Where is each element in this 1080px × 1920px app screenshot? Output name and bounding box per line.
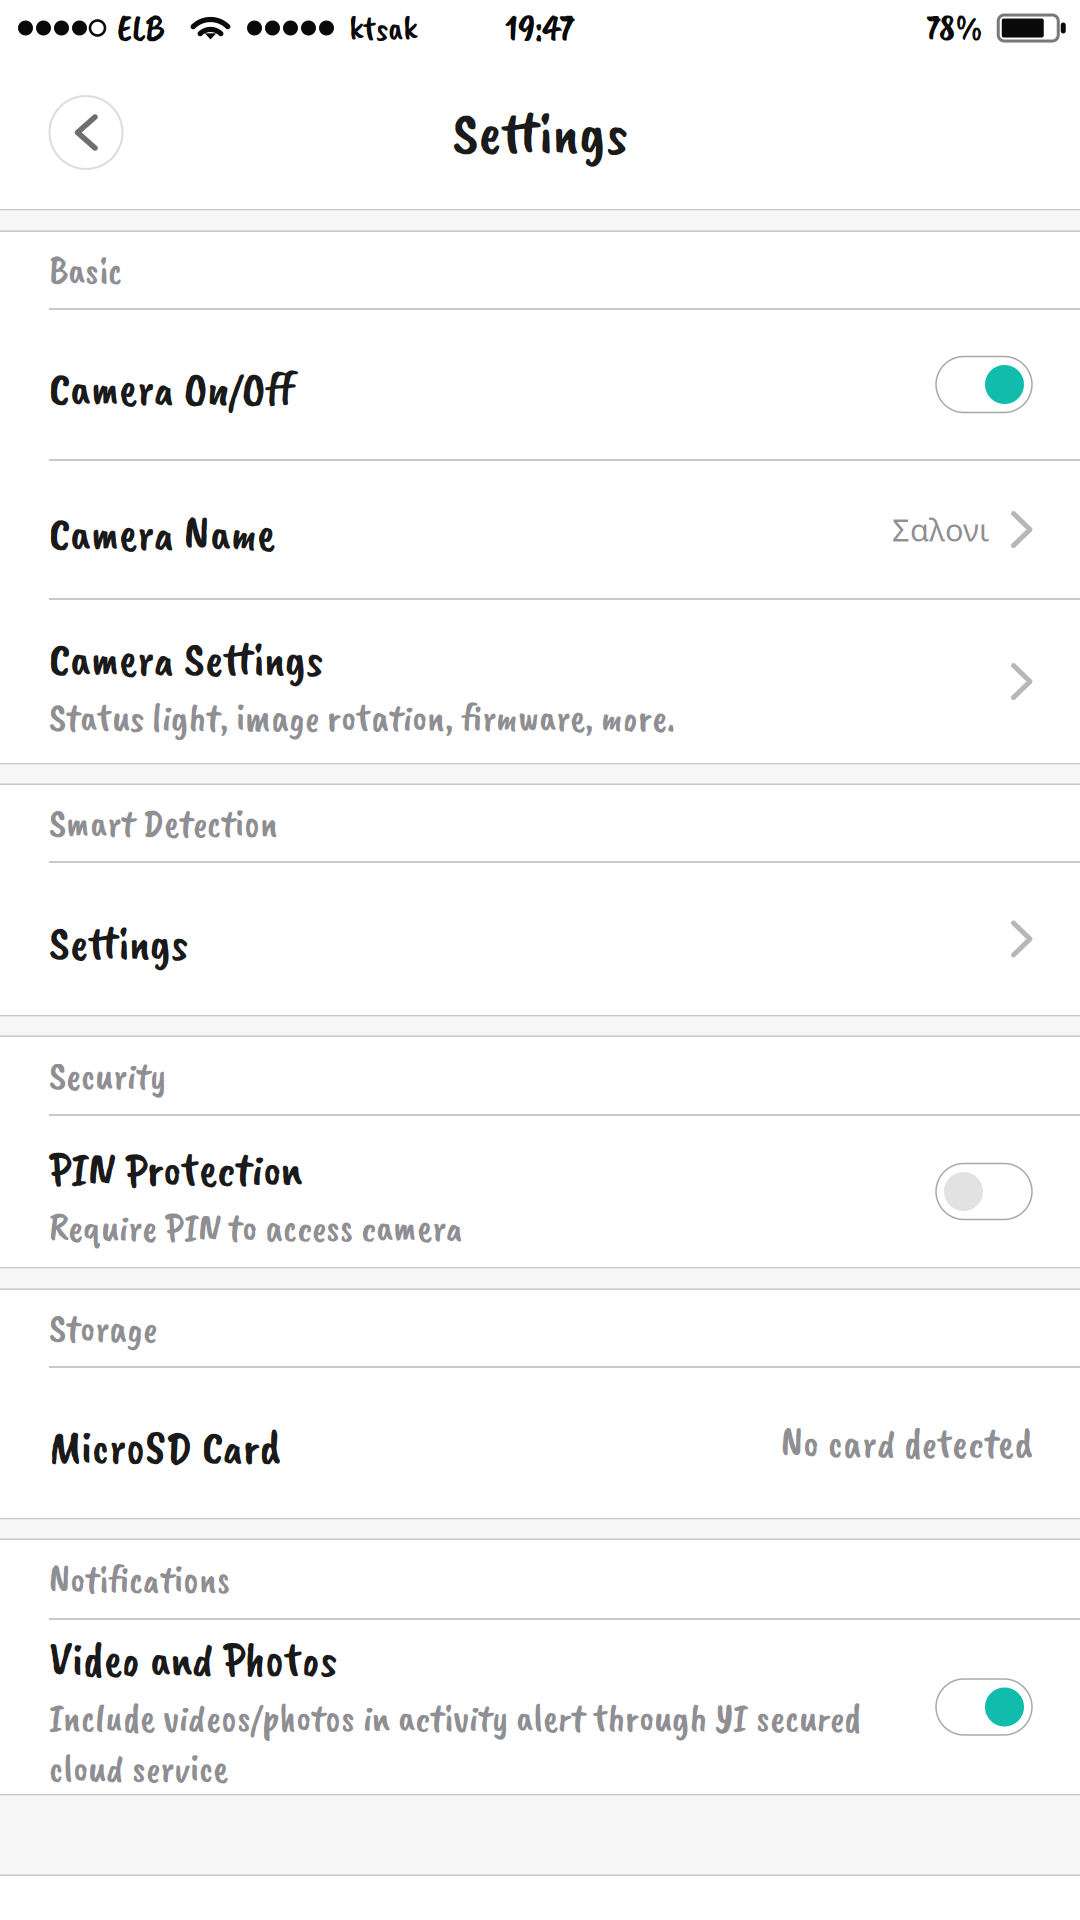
staticText: Σαλονι — [892, 509, 989, 550]
staticText: ELB — [117, 4, 164, 51]
staticText: Security — [49, 1050, 166, 1101]
button[interactable]: PIN Protection — [0, 1116, 1080, 1267]
button[interactable]: Camera Name — [0, 461, 1080, 600]
staticText: Camera Name — [49, 503, 275, 564]
staticText: Smart Detection — [49, 798, 278, 848]
button[interactable]: Camera On/Off — [0, 310, 1080, 461]
staticText: Include videos/photos in activity alert … — [49, 1692, 861, 1793]
button[interactable]: Video and Photos — [0, 1620, 1080, 1794]
staticText: Basic — [49, 245, 122, 295]
staticText: Notifications — [49, 1554, 230, 1604]
staticText: ktsak — [349, 6, 417, 50]
button[interactable]: MicroSD Card — [0, 1368, 1080, 1518]
button[interactable]: Camera Settings — [0, 600, 1080, 763]
staticText: Settings — [49, 913, 188, 973]
staticText: Video and Photos — [49, 1629, 337, 1689]
staticText: Status light, image rotation, firmware, … — [49, 692, 675, 742]
staticText: Camera On/Off — [49, 358, 295, 419]
staticText: MicroSD Card — [49, 1417, 280, 1477]
staticText: Require PIN to access camera — [49, 1202, 463, 1252]
staticText: Camera Settings — [49, 629, 323, 689]
button[interactable]: Settings — [0, 863, 1080, 1015]
staticText: No card detected — [781, 1417, 1032, 1469]
staticText: PIN Protection — [49, 1139, 302, 1199]
staticText: Settings — [452, 95, 627, 170]
staticText: 19:47 — [505, 4, 575, 51]
button[interactable]: Back — [38, 84, 134, 180]
staticText: 78% — [927, 6, 983, 50]
staticText: Storage — [49, 1303, 157, 1353]
